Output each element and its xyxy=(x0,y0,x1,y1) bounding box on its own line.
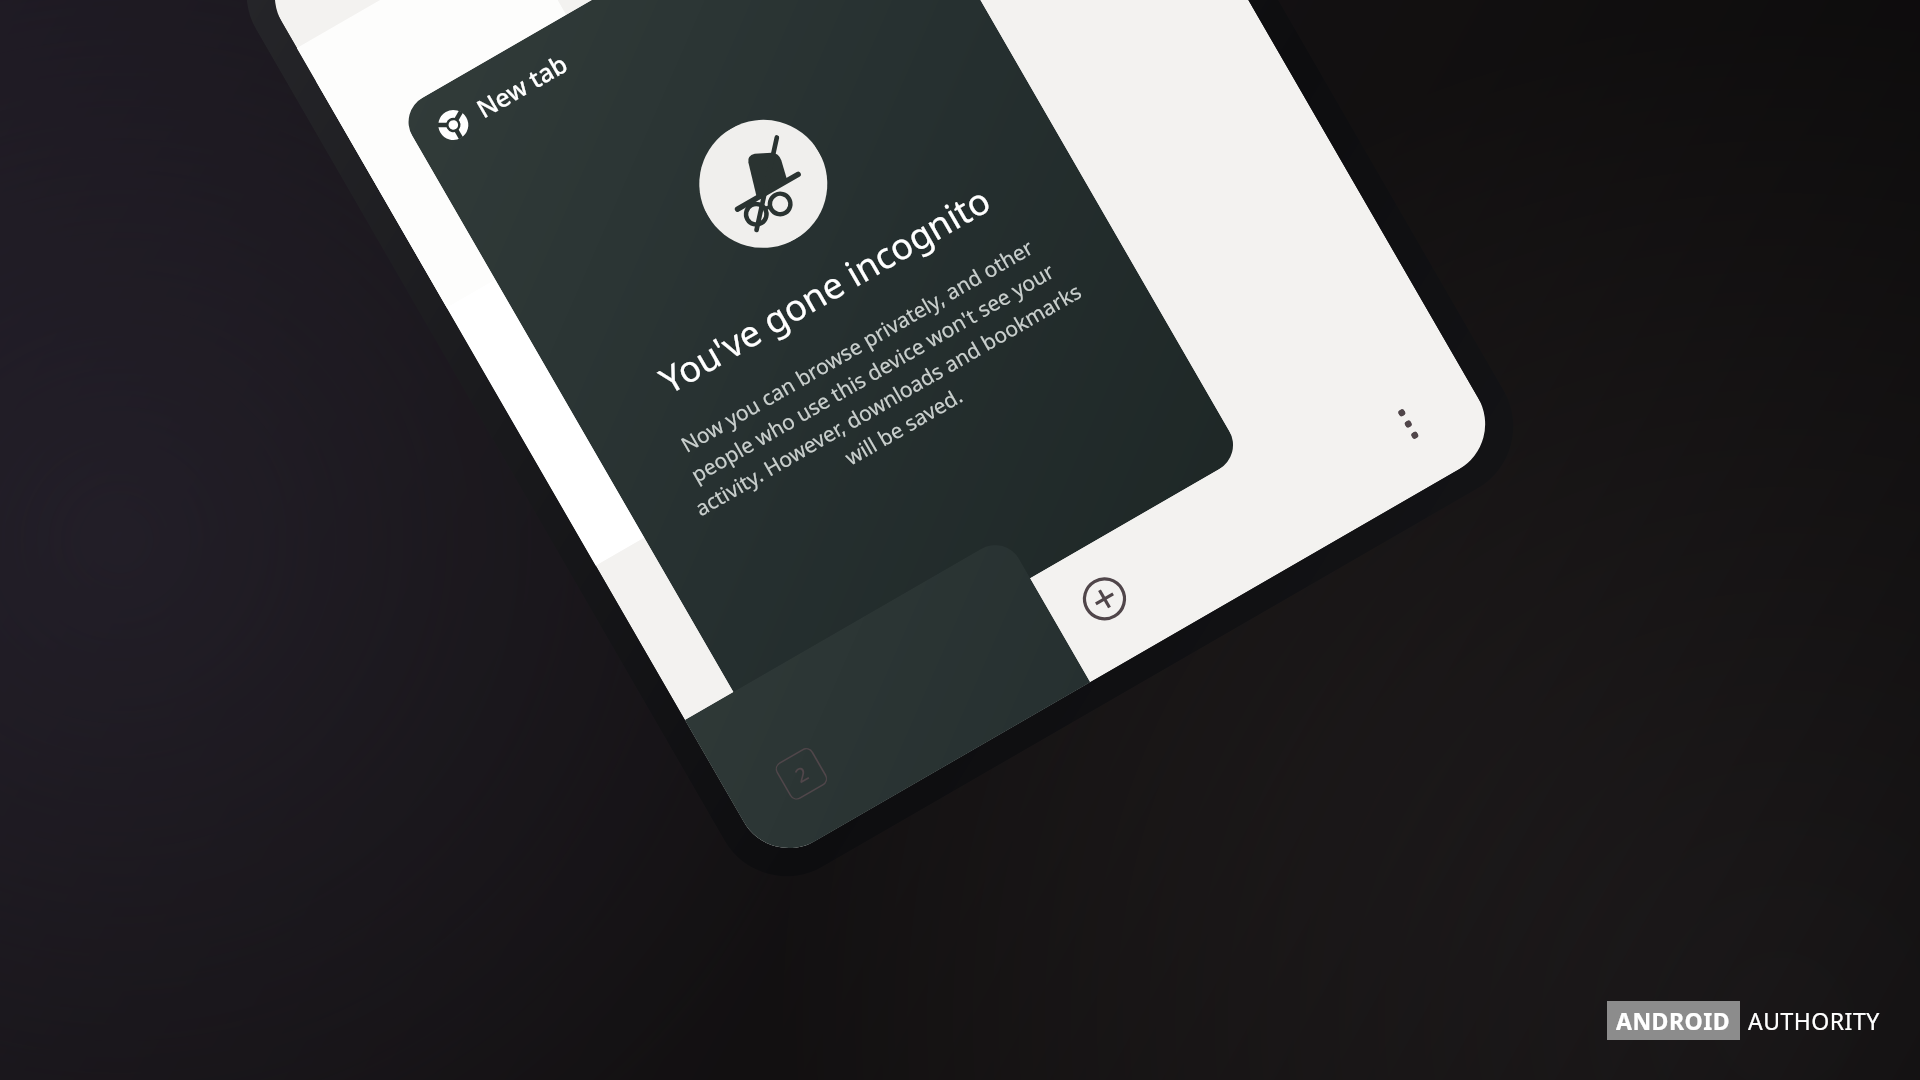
button[interactable]: New tab xyxy=(685,535,1090,867)
staticText: You've gone incognito xyxy=(650,175,999,405)
staticText: Now you can browse privately, and other … xyxy=(645,216,1115,556)
button[interactable]: Tab count 2 xyxy=(747,719,856,828)
button[interactable]: More options xyxy=(1353,369,1462,478)
staticText: New tab xyxy=(470,46,573,125)
staticText: 2 xyxy=(790,760,814,789)
staticText: ANDROID xyxy=(1616,1005,1731,1036)
button[interactable]: New tab xyxy=(398,0,1243,735)
button[interactable]: New incognito tab xyxy=(1046,540,1163,658)
button[interactable]: Close tab switcher xyxy=(320,1,419,99)
staticText: AUTHORITY xyxy=(1748,1005,1880,1036)
